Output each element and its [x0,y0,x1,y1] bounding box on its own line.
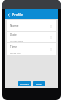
staticText: Time [10,45,17,49]
staticText: 09:30 AM [10,51,21,54]
staticText: Profile [12,12,24,17]
staticText: Date [10,33,17,37]
button[interactable]: Name [7,20,56,32]
button[interactable]: Date [7,32,56,43]
staticText: 15 Jun 2024 [10,39,24,42]
staticText: Name [10,24,19,28]
button[interactable]: Time [7,43,56,55]
button[interactable]: SAVE [33,81,45,86]
staticText: CANCEL [20,82,29,85]
button[interactable]: CANCEL [18,81,31,86]
button[interactable]: Back [5,11,12,18]
staticText: SAVE [36,82,42,85]
